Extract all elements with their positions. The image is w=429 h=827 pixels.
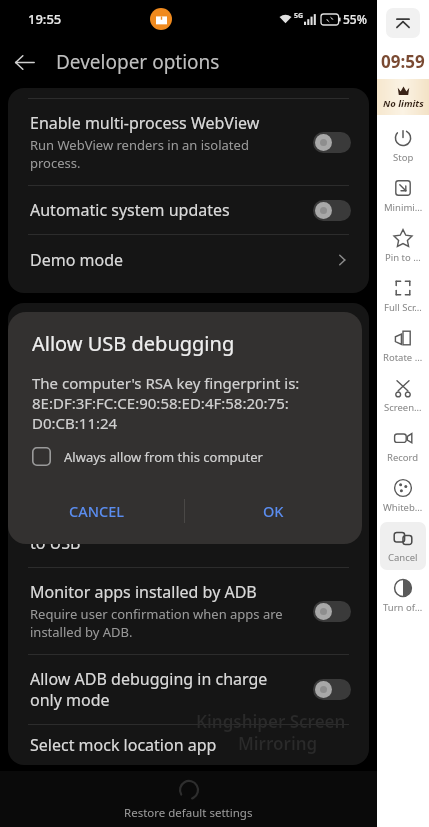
button[interactable]: OK [185,490,362,532]
button[interactable]: Allow ADB debugging in charge only mode [8,655,369,724]
other: Toggle Allow ADB debugging in charge onl… [313,679,351,700]
staticText: Allow USB debugging [32,330,235,357]
staticText: Developer options [56,49,220,75]
button[interactable]: Record [380,422,426,470]
staticText: Full Scr… [384,301,422,314]
staticText: Pin to … [385,251,421,264]
staticText: Kingshiper Screen [196,710,346,733]
button[interactable]: Turn of… [380,572,426,620]
staticText: Stop [393,151,414,164]
staticText: Rotate … [383,351,423,364]
staticText: 55% [343,11,367,27]
staticText: Monitor apps installed by ADB [30,581,257,603]
other: Toggle Enable multi-process WebView [313,132,351,153]
button[interactable]: Select mock location app [8,725,369,765]
staticText: Demo mode [30,249,335,271]
button[interactable]: Rotate … [380,322,426,370]
staticText: Require user confirmation when apps are … [30,605,283,641]
staticText: Mirroring [238,732,318,755]
button[interactable]: No limits [377,79,429,115]
staticText: Allow ADB debugging in charge only mode [30,668,268,711]
staticText: Select mock location app [30,734,217,756]
staticText: Enable multi-process WebView [30,112,260,134]
button[interactable]: Whiteb… [380,472,426,520]
staticText: OK [263,501,284,521]
staticText: 5G [294,11,304,21]
staticText: Cancel [388,551,418,564]
staticText: Always allow from this computer [64,448,263,466]
staticText: Always prompt when connecting to USB [30,511,276,554]
staticText: Screen… [384,401,422,414]
button[interactable]: Stop [380,122,426,170]
button[interactable]: Automatic system updates [8,186,369,234]
staticText: The computer's RSA key fingerprint is: 8… [32,373,300,433]
staticText: 19:55 [28,10,62,28]
staticText: Whiteb… [383,501,423,514]
staticText: Restore default settings [124,805,253,821]
staticText: 09:59 [381,50,425,73]
button[interactable]: Restore default settings [0,771,377,827]
button[interactable]: Monitor apps installed by ADB [8,568,369,654]
button[interactable]: Always allow from this computer [32,447,263,466]
other: Toggle Automatic system updates [313,200,351,221]
button[interactable]: CANCEL [8,490,184,532]
button[interactable]: Pin to … [380,222,426,270]
staticText: Minimi… [384,201,423,214]
staticText: Run WebView renders in an isolated proce… [30,136,249,172]
button[interactable]: Always prompt when connecting to USB [8,509,369,567]
staticText: Record [387,451,419,464]
button[interactable]: Full Scr… [380,272,426,320]
button[interactable]: Collapse [386,8,420,38]
staticText: Automatic system updates [30,199,230,221]
button[interactable]: Minimi… [380,172,426,220]
staticText: CANCEL [69,501,124,521]
button[interactable]: Screen… [380,372,426,420]
button[interactable]: Demo mode [8,235,369,285]
button[interactable]: Cancel [380,522,426,570]
staticText: Upgrade your plan to [222,769,339,784]
staticText: No limits [383,97,424,110]
button[interactable]: Back [0,38,48,86]
button[interactable]: Enable multi-process WebView [8,99,369,185]
other: Toggle Monitor apps installed by ADB [313,601,351,622]
staticText: Turn of… [383,601,423,614]
